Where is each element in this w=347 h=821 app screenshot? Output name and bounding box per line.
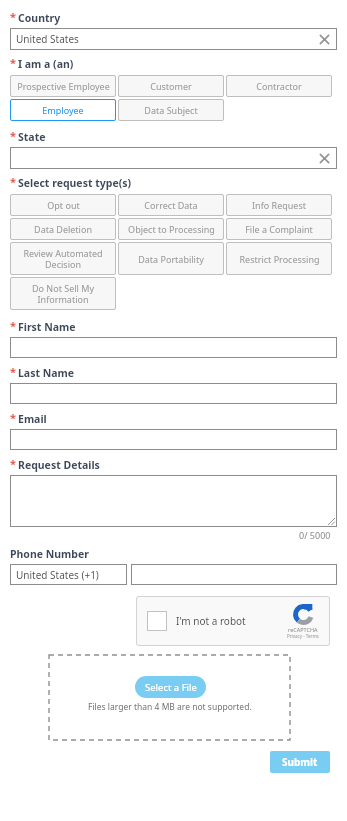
staticText: Data Portability xyxy=(138,253,204,265)
staticText: Do Not Sell My Information xyxy=(13,282,113,306)
button[interactable]: Review Automated Decision xyxy=(10,242,116,275)
staticText: * xyxy=(10,410,16,425)
staticText: Select a File xyxy=(145,681,197,694)
button[interactable]: Restrict Processing xyxy=(226,242,332,275)
button[interactable]: United States xyxy=(10,28,337,50)
staticText: United States xyxy=(16,32,318,46)
staticText: Privacy - Terms xyxy=(287,633,319,639)
button[interactable]: File a Complaint xyxy=(226,218,332,240)
button[interactable]: Customer xyxy=(118,75,224,97)
staticText: Prospective Employee xyxy=(17,80,110,92)
staticText: * xyxy=(10,456,16,471)
button[interactable]: Employee xyxy=(10,99,116,121)
button[interactable]: Correct Data xyxy=(118,194,224,216)
button[interactable]: Submit xyxy=(270,751,330,773)
button[interactable] xyxy=(10,337,337,358)
staticText: File a Complaint xyxy=(245,223,313,235)
staticText: First Name xyxy=(18,320,76,334)
staticText: Info Request xyxy=(252,199,306,211)
button[interactable]: Data Deletion xyxy=(10,218,116,240)
staticText: * xyxy=(10,364,16,379)
staticText: Correct Data xyxy=(144,199,198,211)
staticText: * xyxy=(10,174,16,189)
staticText: * xyxy=(10,9,16,24)
staticText: Last Name xyxy=(18,366,75,380)
button[interactable]: Opt out xyxy=(10,194,116,216)
staticText: Data Deletion xyxy=(34,223,92,235)
button[interactable]: Data Portability xyxy=(118,242,224,275)
staticText: Phone Number xyxy=(10,547,89,561)
staticText: * xyxy=(10,55,16,70)
staticText: reCAPTCHA xyxy=(288,626,318,633)
button[interactable] xyxy=(131,564,337,585)
staticText: I am a (an) xyxy=(18,57,74,71)
staticText: Submit xyxy=(282,755,318,769)
staticText: * xyxy=(10,128,16,143)
button[interactable]: United States (+1) xyxy=(10,564,127,585)
staticText: * xyxy=(10,318,16,333)
staticText: Object to Processing xyxy=(128,223,215,235)
staticText: Review Automated Decision xyxy=(13,247,113,271)
button[interactable]: Info Request xyxy=(226,194,332,216)
button[interactable] xyxy=(10,383,337,404)
staticText: I'm not a robot xyxy=(176,614,246,628)
button[interactable]: Contractor xyxy=(226,75,332,97)
staticText: Files larger than 4 MB are not supported… xyxy=(88,701,252,713)
staticText: Request Details xyxy=(18,458,100,472)
staticText: Customer xyxy=(150,80,192,92)
staticText: Employee xyxy=(42,104,84,116)
staticText: Country xyxy=(18,11,61,25)
button[interactable] xyxy=(10,147,337,169)
button[interactable]: Do Not Sell My Information xyxy=(10,277,116,310)
staticText: State xyxy=(18,130,46,144)
staticText: Select request type(s) xyxy=(18,176,132,190)
staticText: United States (+1) xyxy=(16,568,121,582)
button[interactable]: Select a File xyxy=(49,655,290,740)
button[interactable]: Object to Processing xyxy=(118,218,224,240)
staticText: Contractor xyxy=(256,80,302,92)
staticText: Data Subject xyxy=(144,104,198,116)
button[interactable]: Select a File xyxy=(135,676,206,698)
button[interactable]: I'm not a robot xyxy=(136,596,330,646)
button[interactable]: Prospective Employee xyxy=(10,75,116,97)
staticText: Opt out xyxy=(47,199,80,211)
staticText: 0/ 5000 xyxy=(299,529,331,541)
button[interactable] xyxy=(10,429,337,450)
button[interactable]: Data Subject xyxy=(118,99,224,121)
staticText: Restrict Processing xyxy=(239,253,320,265)
staticText: Email xyxy=(18,412,47,426)
button[interactable] xyxy=(10,475,337,527)
